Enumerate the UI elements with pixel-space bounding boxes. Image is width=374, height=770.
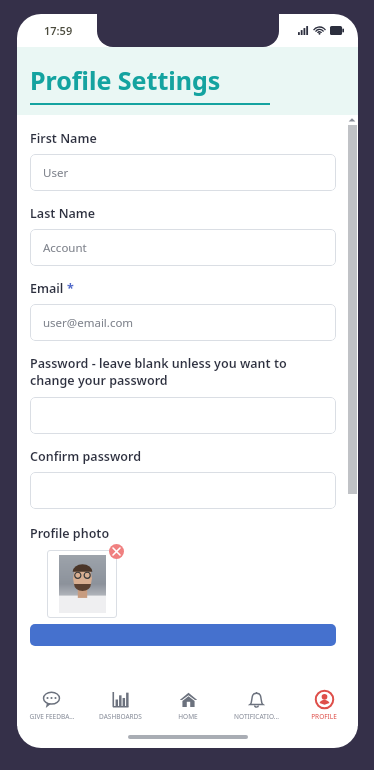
button[interactable]: DASHBOARDS: [86, 684, 154, 726]
button[interactable]: User: [30, 154, 336, 191]
button[interactable]: [30, 472, 336, 509]
staticText: GIVE FEEDBA...: [29, 712, 75, 721]
staticText: NOTIFICATIO...: [234, 712, 279, 721]
staticText: Last Name: [30, 205, 96, 222]
button[interactable]: NOTIFICATIO...: [222, 684, 290, 726]
staticText: *: [67, 280, 74, 297]
staticText: DASHBOARDS: [99, 712, 142, 721]
staticText: 17:59: [44, 23, 73, 38]
button[interactable]: [30, 624, 336, 646]
staticText: Profile photo: [30, 525, 110, 542]
button[interactable]: [52, 555, 112, 613]
staticText: PROFILE: [311, 712, 337, 721]
button[interactable]: Account: [30, 229, 336, 266]
staticText: Profile Settings: [30, 63, 221, 97]
button[interactable]: [30, 397, 336, 434]
button[interactable]: Remove photo: [109, 544, 124, 559]
button[interactable]: user@email.com: [30, 304, 336, 341]
staticText: User: [43, 165, 69, 181]
staticText: Confirm password: [30, 448, 142, 465]
staticText: Account: [43, 240, 87, 256]
button[interactable]: HOME: [154, 684, 222, 726]
button[interactable]: PROFILE: [290, 684, 358, 726]
staticText: HOME: [178, 712, 198, 721]
staticText: Password - leave blank unless you want t…: [30, 355, 287, 389]
staticText: user@email.com: [43, 315, 134, 331]
staticText: First Name: [30, 130, 97, 147]
staticText: Email: [30, 280, 64, 297]
button[interactable]: GIVE FEEDBA...: [17, 684, 86, 726]
